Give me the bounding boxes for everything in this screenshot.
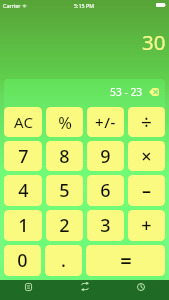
staticText: +/-: [95, 112, 116, 132]
button[interactable]: Convert: [57, 280, 113, 300]
staticText: %: [58, 111, 72, 133]
button[interactable]: 1: [4, 210, 42, 241]
button[interactable]: =: [86, 245, 165, 276]
button[interactable]: ×: [128, 141, 165, 171]
button[interactable]: +/-: [87, 107, 124, 137]
staticText: 6: [100, 178, 111, 203]
staticText: 1: [18, 213, 29, 238]
staticText: 9: [100, 144, 111, 169]
staticText: 5: [59, 178, 70, 203]
staticText: =: [120, 247, 132, 274]
staticText: 5:15 PM: [74, 2, 95, 9]
button[interactable]: History: [113, 280, 169, 300]
staticText: 2: [59, 213, 70, 238]
staticText: 8: [59, 144, 70, 169]
staticText: AC: [14, 112, 33, 132]
staticText: .: [61, 248, 66, 273]
button[interactable]: 5: [46, 175, 83, 206]
button[interactable]: AC: [4, 107, 42, 137]
button[interactable]: 9: [87, 141, 124, 171]
staticText: ÷: [141, 109, 152, 135]
button[interactable]: Calculator: [0, 280, 57, 300]
button[interactable]: 7: [4, 141, 42, 171]
staticText: 30: [142, 28, 166, 56]
staticText: 53 - 23: [110, 85, 143, 99]
button[interactable]: ÷: [128, 107, 165, 137]
staticText: ×: [141, 144, 152, 169]
staticText: +: [141, 213, 152, 238]
button[interactable]: Backspace: [149, 88, 159, 96]
button[interactable]: .: [45, 245, 82, 276]
staticText: 3: [100, 213, 111, 238]
button[interactable]: 8: [46, 141, 83, 171]
button[interactable]: –: [128, 175, 165, 206]
button[interactable]: +: [128, 210, 165, 241]
button[interactable]: 4: [4, 175, 42, 206]
button[interactable]: 2: [46, 210, 83, 241]
staticText: Carrier: [3, 2, 21, 9]
button[interactable]: 3: [87, 210, 124, 241]
button[interactable]: 0: [4, 245, 41, 276]
staticText: 4: [18, 178, 29, 203]
button[interactable]: %: [46, 107, 83, 137]
staticText: –: [142, 178, 151, 203]
button[interactable]: 6: [87, 175, 124, 206]
staticText: 7: [18, 144, 29, 169]
staticText: 0: [17, 248, 28, 273]
